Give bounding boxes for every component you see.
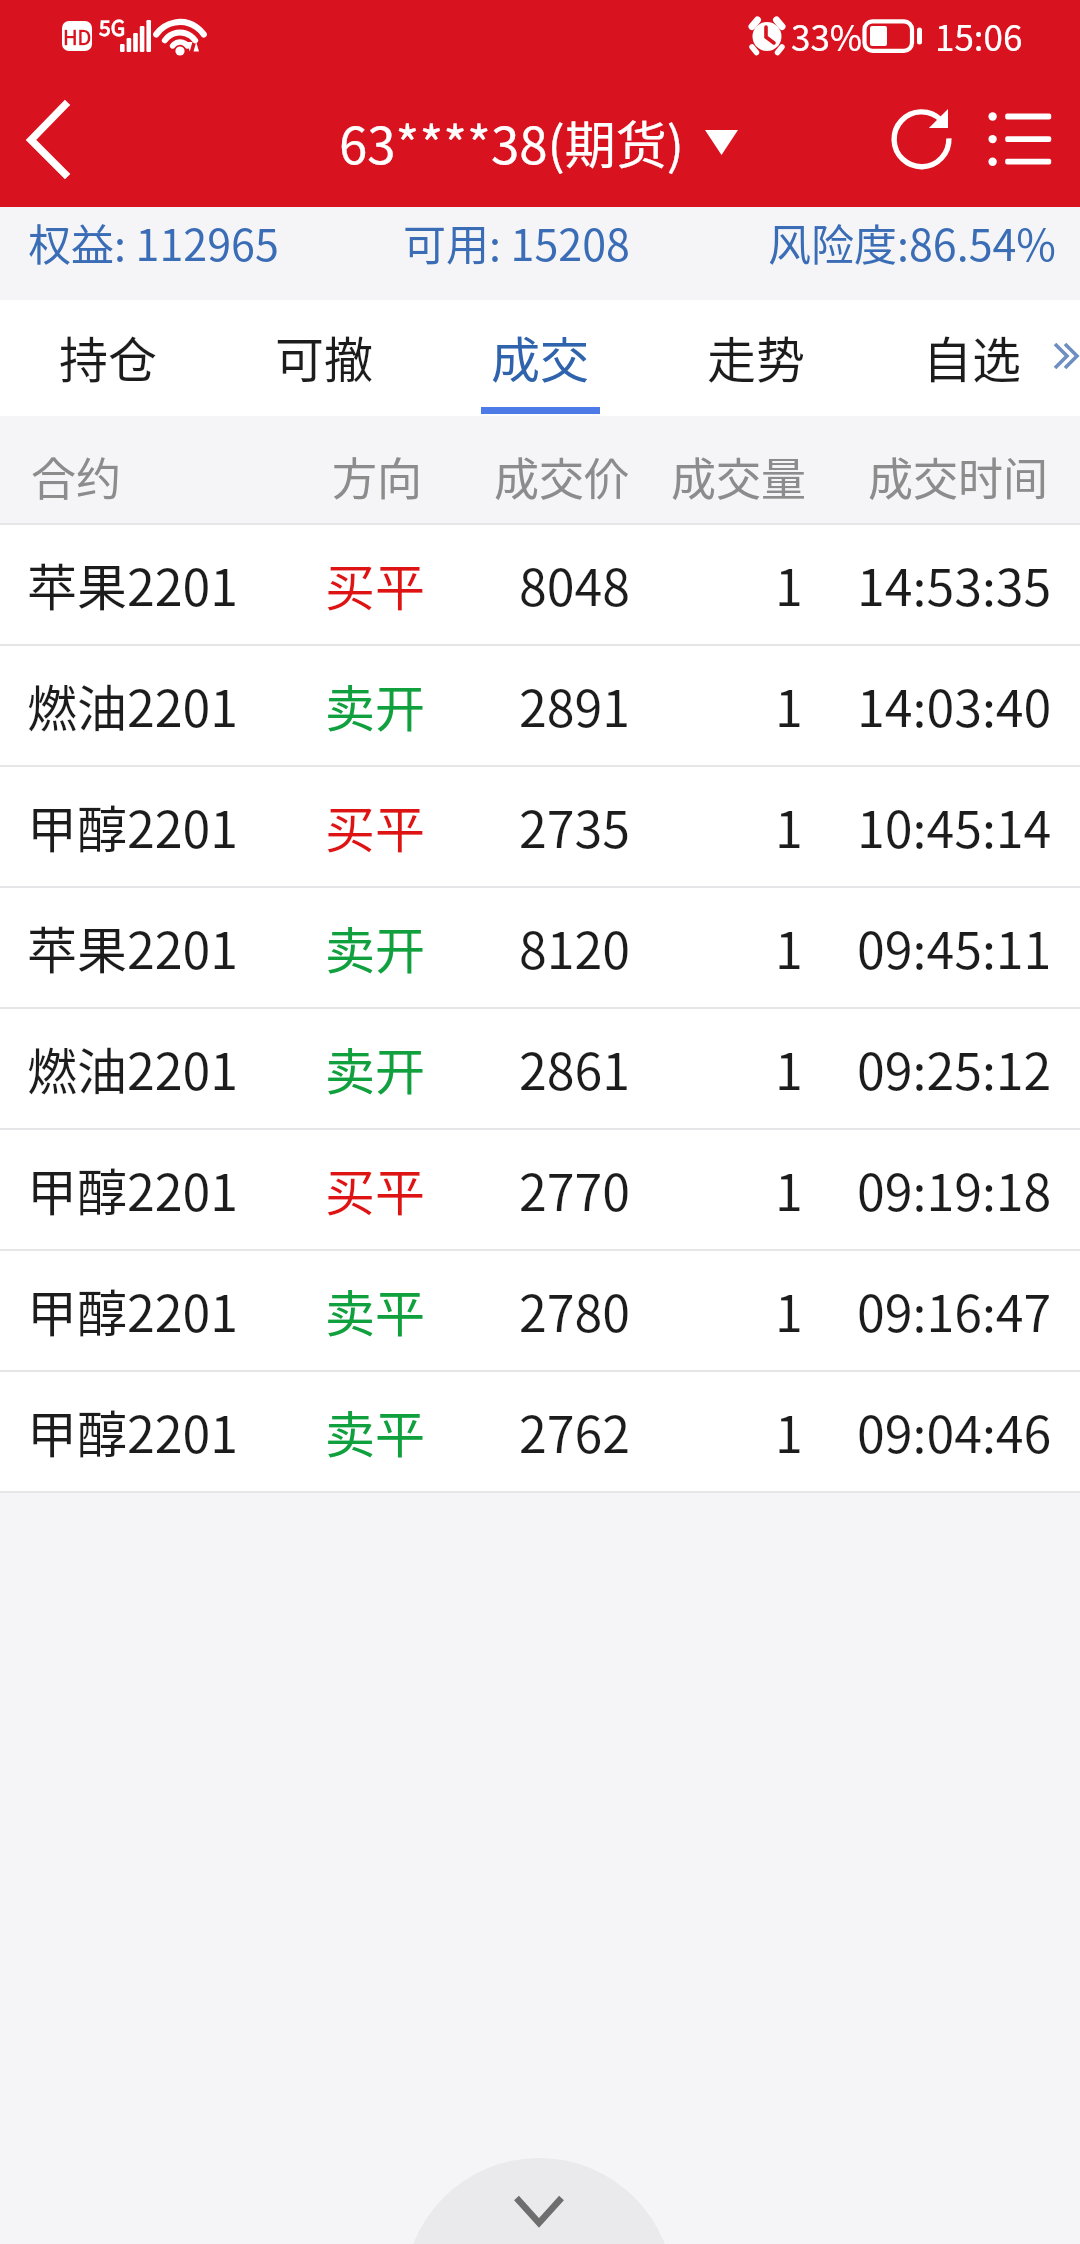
staticText: 14:53:35 <box>857 548 1052 620</box>
staticText: 成交量 <box>671 444 807 509</box>
staticText: 09:45:11 <box>857 911 1052 983</box>
staticText: 1 <box>775 1153 803 1225</box>
staticText: 风险度:86.54% <box>768 211 1056 273</box>
staticText: HD <box>63 22 92 51</box>
staticText: 成交价 <box>494 444 630 509</box>
staticText: 33% <box>791 10 863 61</box>
staticText: 甲醇2201 <box>27 1274 238 1346</box>
staticText: 09:16:47 <box>857 1274 1052 1346</box>
staticText: 成交 <box>491 321 590 392</box>
staticText: 10:45:14 <box>857 790 1052 862</box>
staticText: 燃油2201 <box>27 669 238 741</box>
staticText: 卖平 <box>325 1395 425 1467</box>
staticText: 苹果2201 <box>27 911 238 983</box>
button[interactable]: More tabs <box>1048 337 1080 377</box>
button[interactable]: Back <box>0 80 110 207</box>
button[interactable]: 自选 <box>864 300 1080 416</box>
button[interactable]: 可撤 <box>216 300 432 416</box>
button[interactable]: 持仓 <box>0 300 216 416</box>
staticText: 2891 <box>519 669 630 741</box>
staticText: 09:04:46 <box>857 1395 1052 1467</box>
staticText: 买平 <box>325 790 425 862</box>
button[interactable]: 甲醇2201 <box>0 1372 1080 1493</box>
staticText: 成交时间 <box>868 444 1049 509</box>
button[interactable]: 甲醇2201 <box>0 767 1080 888</box>
staticText: 合约 <box>31 444 122 509</box>
staticText: 1 <box>775 790 803 862</box>
staticText: 5G <box>99 12 126 42</box>
staticText: 1 <box>775 548 803 620</box>
staticText: 可用: 15208 <box>403 211 630 273</box>
staticText: 自选 <box>923 321 1022 392</box>
staticText: 1 <box>775 911 803 983</box>
button[interactable]: 苹果2201 <box>0 888 1080 1009</box>
button[interactable]: 燃油2201 <box>0 1009 1080 1130</box>
staticText: 卖平 <box>325 1274 425 1346</box>
staticText: 买平 <box>325 548 425 620</box>
staticText: 1 <box>775 1032 803 1104</box>
button[interactable]: 成交 <box>432 300 648 416</box>
staticText: 2735 <box>519 790 630 862</box>
staticText: 卖开 <box>325 911 425 983</box>
staticText: 2861 <box>519 1032 630 1104</box>
staticText: 苹果2201 <box>27 548 238 620</box>
button[interactable]: Menu <box>978 80 1068 207</box>
staticText: 1 <box>775 1274 803 1346</box>
button[interactable]: Refresh <box>874 80 970 207</box>
staticText: 1 <box>775 1395 803 1467</box>
staticText: 权益: 112965 <box>28 211 279 273</box>
button[interactable]: 63****38(期货) <box>339 105 738 179</box>
staticText: 15:06 <box>935 10 1023 61</box>
staticText: 买平 <box>325 1153 425 1225</box>
staticText: 甲醇2201 <box>27 790 238 862</box>
staticText: 方向 <box>332 444 423 509</box>
staticText: 甲醇2201 <box>27 1153 238 1225</box>
staticText: 63****38(期货) <box>339 105 684 179</box>
button[interactable]: 甲醇2201 <box>0 1251 1080 1372</box>
staticText: 09:19:18 <box>857 1153 1052 1225</box>
staticText: 8048 <box>519 548 630 620</box>
button[interactable]: 燃油2201 <box>0 646 1080 767</box>
staticText: 2762 <box>519 1395 630 1467</box>
staticText: 可撤 <box>275 321 374 392</box>
button[interactable]: 走势 <box>648 300 864 416</box>
staticText: 甲醇2201 <box>27 1395 238 1467</box>
staticText: 8120 <box>519 911 630 983</box>
button[interactable]: 苹果2201 <box>0 525 1080 646</box>
staticText: 持仓 <box>59 321 158 392</box>
staticText: 2770 <box>519 1153 630 1225</box>
button[interactable]: 甲醇2201 <box>0 1130 1080 1251</box>
staticText: 卖开 <box>325 669 425 741</box>
button[interactable]: Collapse <box>404 2158 674 2244</box>
staticText: 1 <box>775 669 803 741</box>
staticText: 14:03:40 <box>857 669 1052 741</box>
staticText: 卖开 <box>325 1032 425 1104</box>
staticText: 09:25:12 <box>857 1032 1052 1104</box>
staticText: 2780 <box>519 1274 630 1346</box>
staticText: 燃油2201 <box>27 1032 238 1104</box>
staticText: 走势 <box>707 321 806 392</box>
